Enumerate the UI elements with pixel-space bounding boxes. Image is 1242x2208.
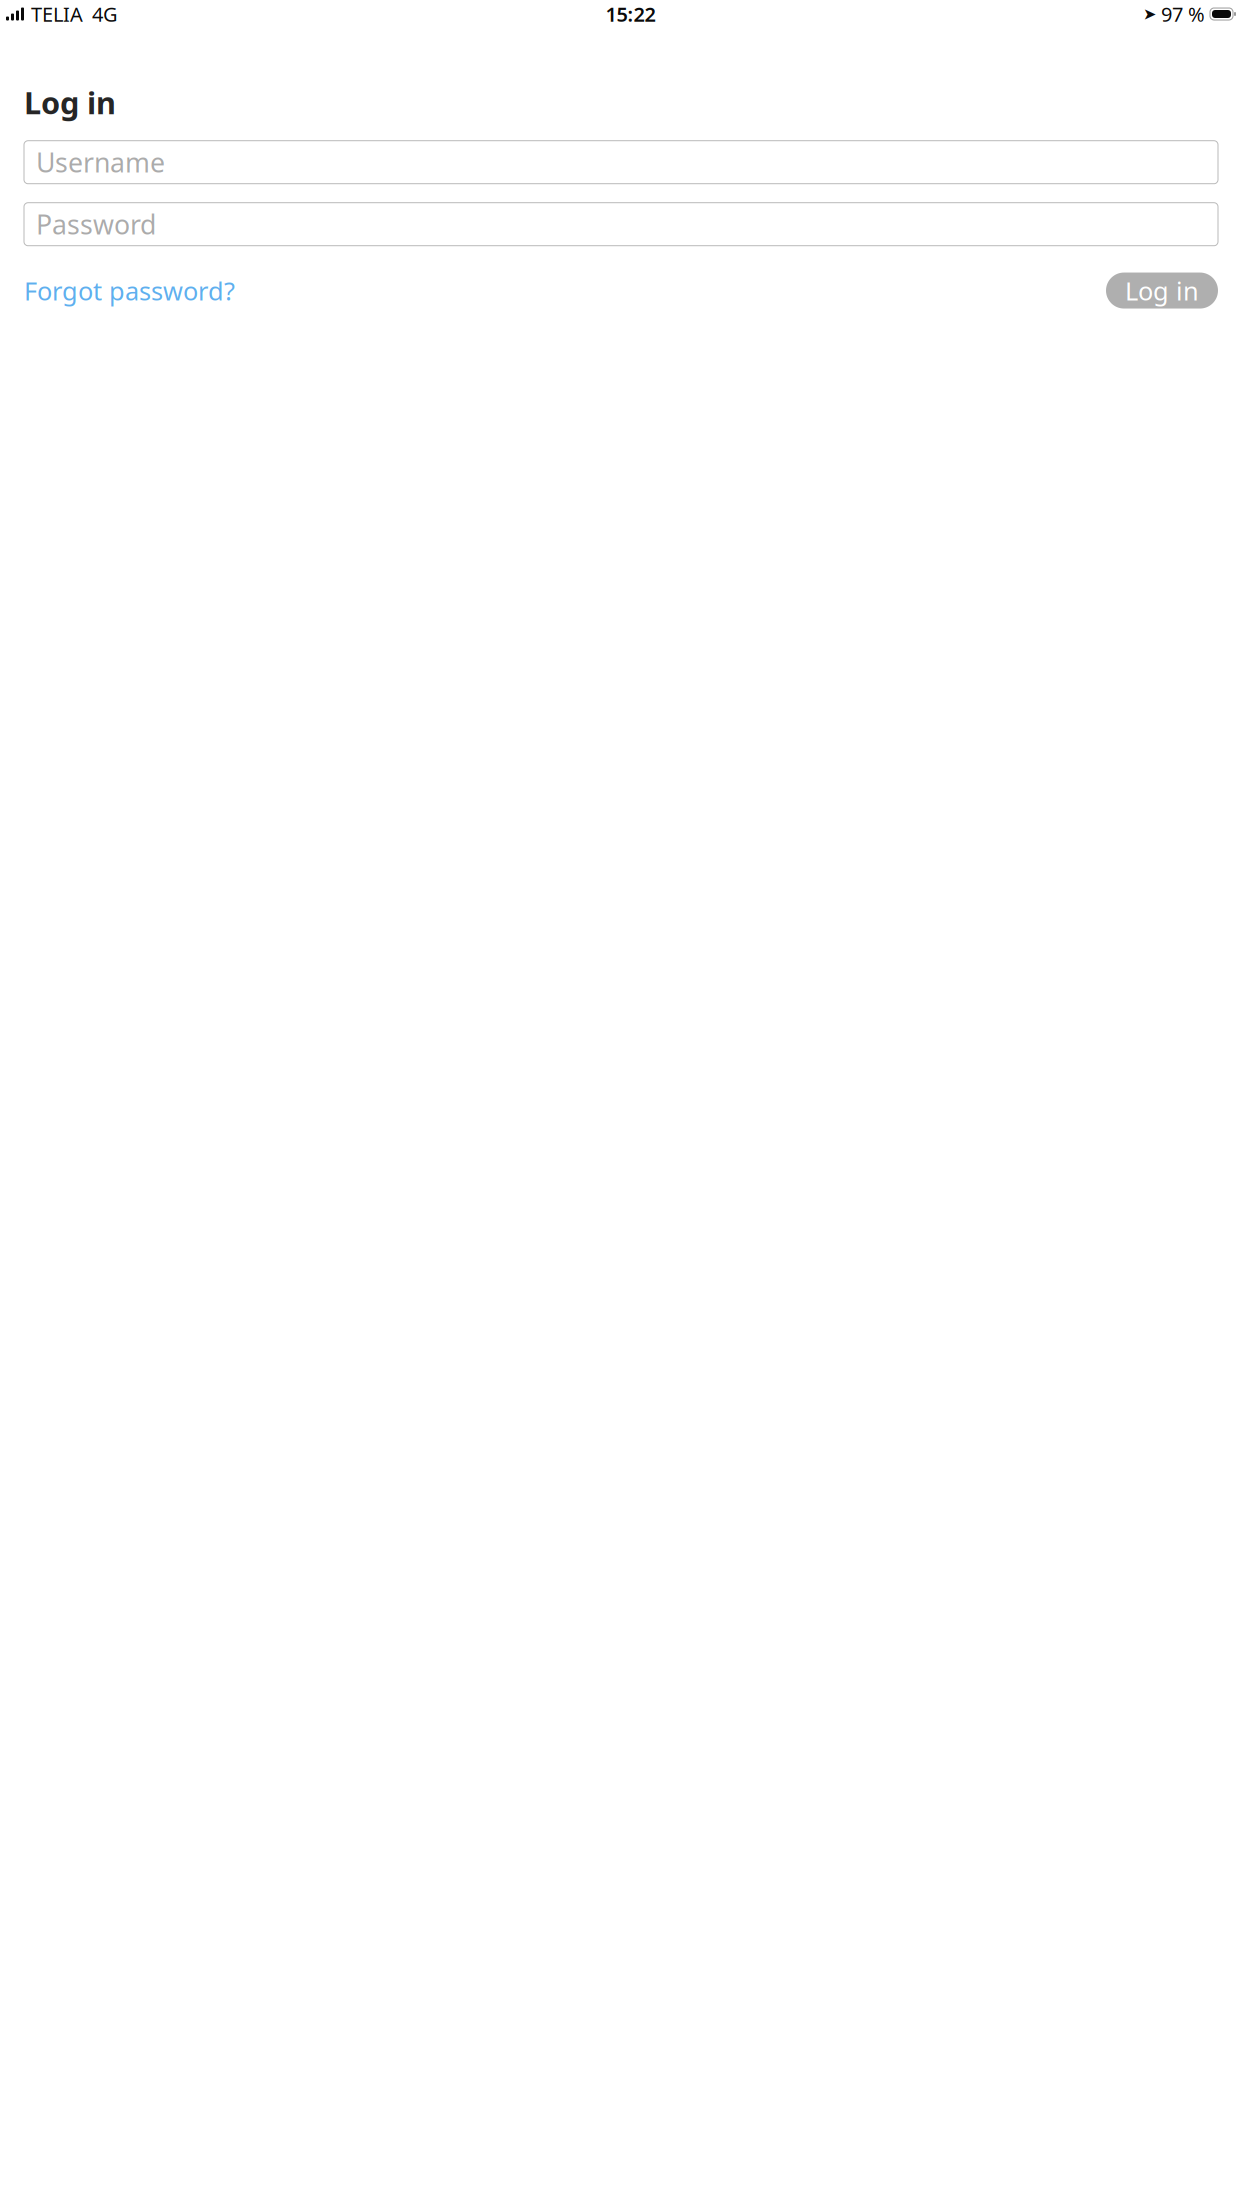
staticText: Log in [24, 82, 116, 123]
staticText: Forgot password? [24, 274, 235, 307]
staticText: TELIA [31, 1, 83, 27]
staticText: Password [36, 206, 156, 242]
staticText: Log in [1125, 274, 1199, 307]
staticText: ➤ [1143, 5, 1156, 23]
staticText: 15:22 [605, 1, 655, 27]
staticText: Username [36, 144, 165, 180]
staticText: 4G [92, 1, 118, 27]
button[interactable]: Forgot password? [24, 266, 235, 315]
button[interactable]: Log in [1106, 272, 1218, 308]
staticText: 97 % [1161, 1, 1205, 27]
button[interactable]: Username [24, 141, 1218, 184]
button[interactable]: Password [24, 203, 1218, 246]
